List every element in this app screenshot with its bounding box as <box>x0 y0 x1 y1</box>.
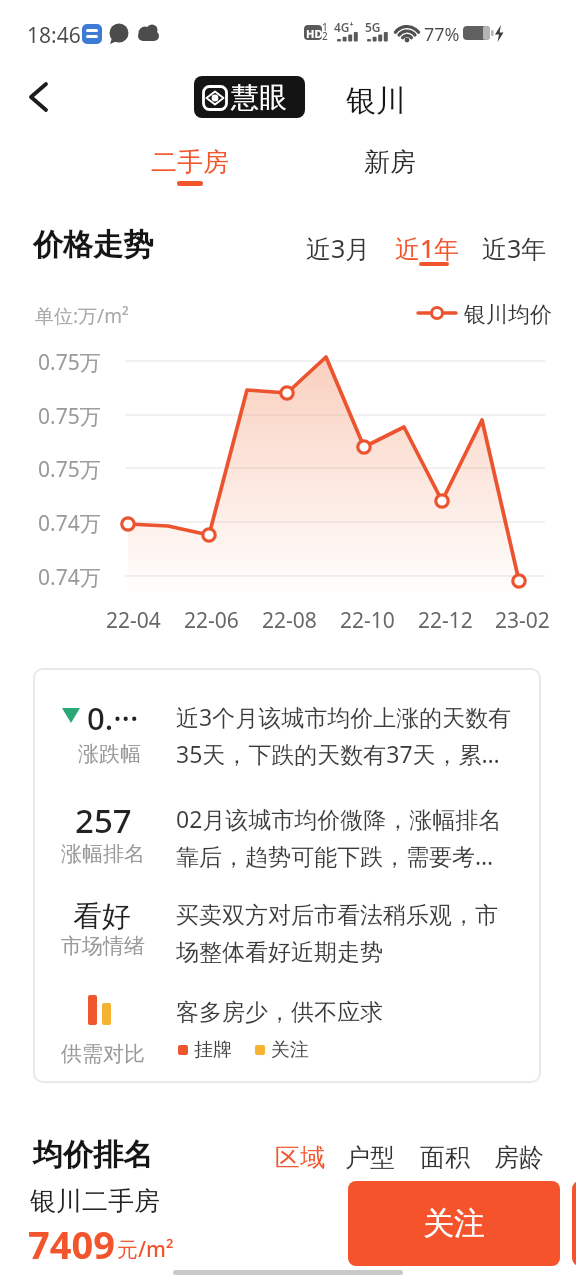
staticText: 77% <box>424 22 460 47</box>
staticText: 35天，下跌的天数有37天，累… <box>176 738 500 769</box>
staticText: 慧眼 <box>231 80 287 115</box>
staticText: 1 <box>322 20 328 34</box>
staticText: 近3个月该城市均价上涨的天数有 <box>176 701 512 732</box>
button[interactable]: 二手房 <box>130 138 250 190</box>
staticText: 0.75万 <box>38 402 101 431</box>
staticText: 257 <box>75 798 132 843</box>
staticText: 银川均价 <box>464 301 552 329</box>
staticText: 市场情绪 <box>61 933 145 959</box>
staticText: 单位:万/m² <box>35 303 129 329</box>
staticText: 22-08 <box>262 606 317 635</box>
staticText: 0.74万 <box>38 509 101 538</box>
staticText: 0.74万 <box>38 563 101 592</box>
staticText: 18:46 <box>27 21 81 50</box>
staticText: 0.··· <box>87 697 139 739</box>
staticText: 22-12 <box>418 606 473 635</box>
staticText: 2 <box>322 29 328 43</box>
staticText: 0.75万 <box>38 348 101 377</box>
staticText: 7409 <box>28 1218 115 1270</box>
staticText: 新房 <box>364 146 416 179</box>
staticText: 客多房少，供不应求 <box>176 998 383 1027</box>
staticText: 靠后，趋势可能下跌，需要考… <box>176 840 494 871</box>
staticText: 关注 <box>271 1038 309 1062</box>
staticText: 场整体看好近期走势 <box>176 938 383 967</box>
staticText: 看好 <box>73 898 131 935</box>
staticText: 银川 <box>346 82 406 120</box>
staticText: 价格走势 <box>33 226 153 264</box>
button[interactable]: 面积 <box>420 1142 470 1173</box>
button[interactable]: 户型 <box>345 1142 395 1173</box>
staticText: 涨幅排名 <box>61 841 145 867</box>
staticText: 22-04 <box>106 606 161 635</box>
staticText: 均价排名 <box>33 1136 153 1174</box>
button[interactable]: 新房 <box>330 138 450 190</box>
staticText: HD <box>306 26 323 41</box>
button[interactable]: 近3月 <box>306 231 371 265</box>
staticText: 02月该城市均价微降，涨幅排名 <box>176 803 502 834</box>
staticText: 涨跌幅 <box>78 741 141 767</box>
staticText: 23-02 <box>495 606 550 635</box>
staticText: 5G <box>365 19 381 35</box>
staticText: 银川二手房 <box>30 1185 160 1218</box>
button[interactable]: 房龄 <box>494 1142 544 1173</box>
button[interactable]: 近3年 <box>482 231 547 265</box>
button[interactable]: 近1年 <box>395 231 460 265</box>
staticText: 供需对比 <box>61 1041 145 1067</box>
button[interactable] <box>18 74 62 118</box>
staticText: 元/m² <box>117 1235 174 1264</box>
staticText: 挂牌 <box>194 1038 232 1062</box>
staticText: 0.75万 <box>38 455 101 484</box>
staticText: 4G⁺ <box>334 19 354 35</box>
button[interactable]: 区域 <box>275 1142 325 1173</box>
staticText: 22-10 <box>340 606 395 635</box>
button[interactable]: 关注 <box>348 1181 560 1266</box>
staticText: 买卖双方对后市看法稍乐观，市 <box>176 901 498 930</box>
staticText: 关注 <box>423 1204 485 1243</box>
staticText: 二手房 <box>151 146 229 179</box>
staticText: 22-06 <box>184 606 239 635</box>
